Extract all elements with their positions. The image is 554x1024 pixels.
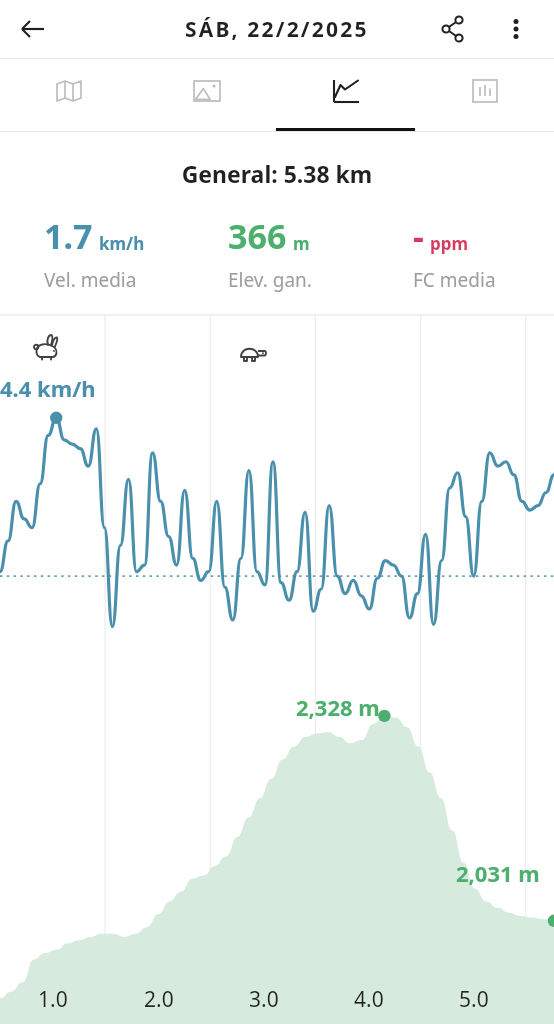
staticText: Elev. gan. (228, 267, 312, 293)
staticText: m (293, 232, 310, 255)
button[interactable]: Map (0, 59, 138, 131)
button[interactable]: Share (430, 6, 476, 52)
staticText: 2,328 m (296, 692, 380, 722)
staticText: 4.0 (354, 985, 384, 1014)
staticText: General: 5.38 km (0, 158, 554, 189)
staticText: 3.0 (249, 985, 279, 1014)
staticText: km/h (99, 232, 145, 255)
staticText: 2.0 (144, 985, 174, 1014)
button[interactable]: More options (494, 7, 538, 51)
staticText: 366 (228, 213, 287, 259)
staticText: - (413, 213, 424, 259)
button[interactable]: 1.7 (0, 213, 184, 293)
staticText: 5.0 (459, 985, 489, 1014)
staticText: 1.7 (44, 213, 93, 259)
staticText: Vel. media (44, 267, 137, 293)
button[interactable]: Charts (276, 59, 415, 131)
button[interactable]: Stats (415, 59, 554, 131)
staticText: SÁB, 22/2/2025 (185, 15, 369, 44)
staticText: 4.4 km/h (0, 373, 96, 403)
staticText: ppm (430, 232, 469, 255)
staticText: FC media (413, 267, 496, 293)
staticText: 2,031 m (456, 858, 540, 888)
staticText: 1.0 (38, 985, 68, 1014)
button[interactable]: Back (10, 6, 56, 52)
button[interactable]: 4.4 km/h (0, 315, 554, 1024)
button[interactable]: Photos (138, 59, 276, 131)
button[interactable]: - (369, 213, 554, 293)
button[interactable]: 366 (184, 213, 369, 293)
